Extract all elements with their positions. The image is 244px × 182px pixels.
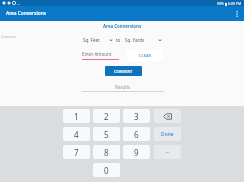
staticText: 4 [74,129,79,140]
button[interactable]: 0 [93,163,120,177]
staticText: Sq. Feet [83,37,100,43]
staticText: 6 [134,129,139,140]
staticText: 99% [217,1,224,6]
staticText: CONVERT [114,69,133,74]
button[interactable]: CLEAR [127,50,163,61]
button[interactable]: Backspace [154,109,181,123]
staticText: 0 [104,165,109,176]
staticText: … [17,1,21,6]
staticText: 2 [104,111,109,122]
staticText: Sq. Yards [125,37,145,43]
staticText: Convert [1,34,16,39]
staticText: Area Conversions [6,10,47,17]
button[interactable]: Done [154,127,181,141]
button[interactable]: More options [230,6,244,21]
staticText: Results [115,84,131,90]
staticText: to [116,37,121,43]
staticText: 3 [134,111,139,122]
staticText: 7 [74,147,79,158]
button[interactable]: 8 [93,145,120,159]
button[interactable]: Sq. Feet [82,37,113,43]
button[interactable]: 2 [93,109,120,123]
button[interactable]: 1 [63,109,90,123]
button[interactable]: 6 [123,127,150,141]
staticText: 1 [74,111,79,122]
button[interactable]: 5 [93,127,120,141]
staticText: Done [161,131,174,138]
staticText: 9 [134,147,139,158]
staticText: 6:09 PM [228,1,242,6]
button[interactable]: 7 [63,145,90,159]
button[interactable] [154,145,181,159]
staticText: Enter Amount [82,51,112,57]
button[interactable]: 4 [63,127,90,141]
button[interactable]: 9 [123,145,150,159]
staticText: Area Conversions [103,23,142,29]
staticText: 8 [104,147,109,158]
button[interactable]: 3 [123,109,150,123]
staticText: CLEAR [139,53,152,58]
button[interactable]: Sq. Yards [124,37,162,43]
button[interactable]: CONVERT [105,66,142,76]
staticText: 5 [104,129,109,140]
